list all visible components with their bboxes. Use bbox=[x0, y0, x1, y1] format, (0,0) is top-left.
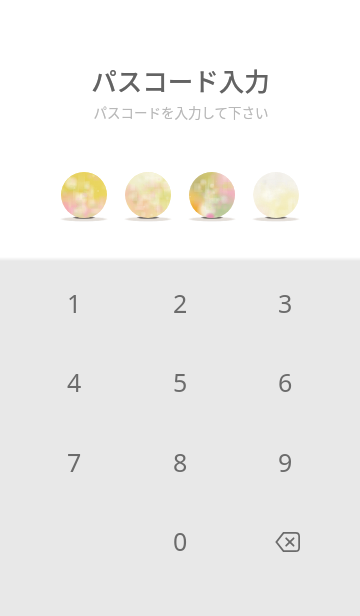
staticText: 0 bbox=[173, 524, 188, 558]
button[interactable]: 2 bbox=[132, 266, 228, 340]
staticText: 3 bbox=[278, 286, 293, 320]
button[interactable]: 3 bbox=[237, 266, 333, 340]
button[interactable]: 5 bbox=[132, 345, 228, 419]
staticText: 4 bbox=[67, 365, 82, 399]
button[interactable]: 7 bbox=[26, 425, 122, 499]
staticText: 8 bbox=[173, 445, 188, 479]
staticText: パスコード入力 bbox=[91, 61, 270, 98]
staticText: 9 bbox=[278, 445, 293, 479]
staticText: 1 bbox=[67, 286, 82, 320]
button[interactable]: 1 bbox=[26, 266, 122, 340]
staticText: 6 bbox=[278, 365, 293, 399]
staticText: パスコードを入力して下さい bbox=[93, 102, 269, 122]
button[interactable]: 0 bbox=[132, 504, 228, 578]
button[interactable]: 8 bbox=[132, 425, 228, 499]
button[interactable]: 9 bbox=[237, 425, 333, 499]
button[interactable]: 4 bbox=[26, 345, 122, 419]
staticText: パスコード入力 bbox=[91, 61, 270, 98]
staticText: 5 bbox=[173, 365, 188, 399]
button[interactable]: Backspace bbox=[237, 504, 333, 578]
staticText: 2 bbox=[173, 286, 188, 320]
button[interactable]: 6 bbox=[237, 345, 333, 419]
staticText: 7 bbox=[67, 445, 82, 479]
